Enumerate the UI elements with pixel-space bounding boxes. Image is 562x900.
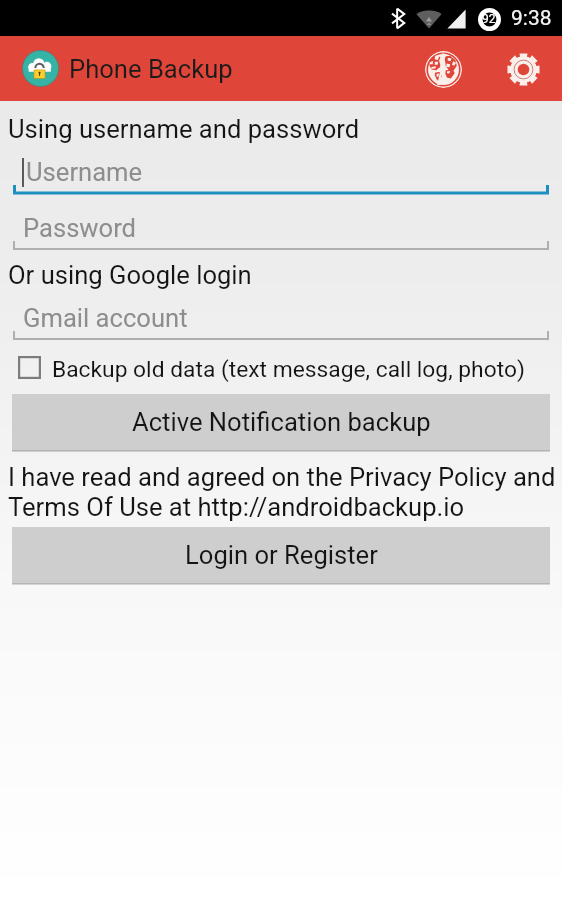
staticText: Gmail account (23, 303, 188, 333)
staticText: Phone Backup (69, 54, 233, 84)
staticText: 9:38 (511, 6, 552, 31)
staticText: I have read and agreed on the Privacy Po… (8, 462, 562, 522)
button[interactable]: Login or Register (12, 527, 550, 583)
button[interactable]: Active Notification backup (12, 394, 550, 450)
button[interactable]: Change language (417, 43, 469, 95)
button[interactable]: Username (13, 157, 549, 200)
staticText: Password (23, 213, 137, 243)
button[interactable]: Settings (497, 43, 549, 95)
staticText: Active Notification backup (132, 407, 431, 437)
staticText: Or using Google login (8, 260, 252, 290)
button[interactable]: Gmail account (13, 303, 549, 346)
staticText: Username (26, 157, 143, 187)
button[interactable]: Password (13, 213, 549, 256)
staticText: Backup old data (text message, call log,… (52, 356, 525, 383)
staticText: Using username and password (8, 114, 360, 144)
staticText: Login or Register (185, 540, 378, 570)
staticText: 92 (482, 12, 496, 26)
button[interactable]: Backup old data (text message, call log,… (18, 357, 562, 384)
